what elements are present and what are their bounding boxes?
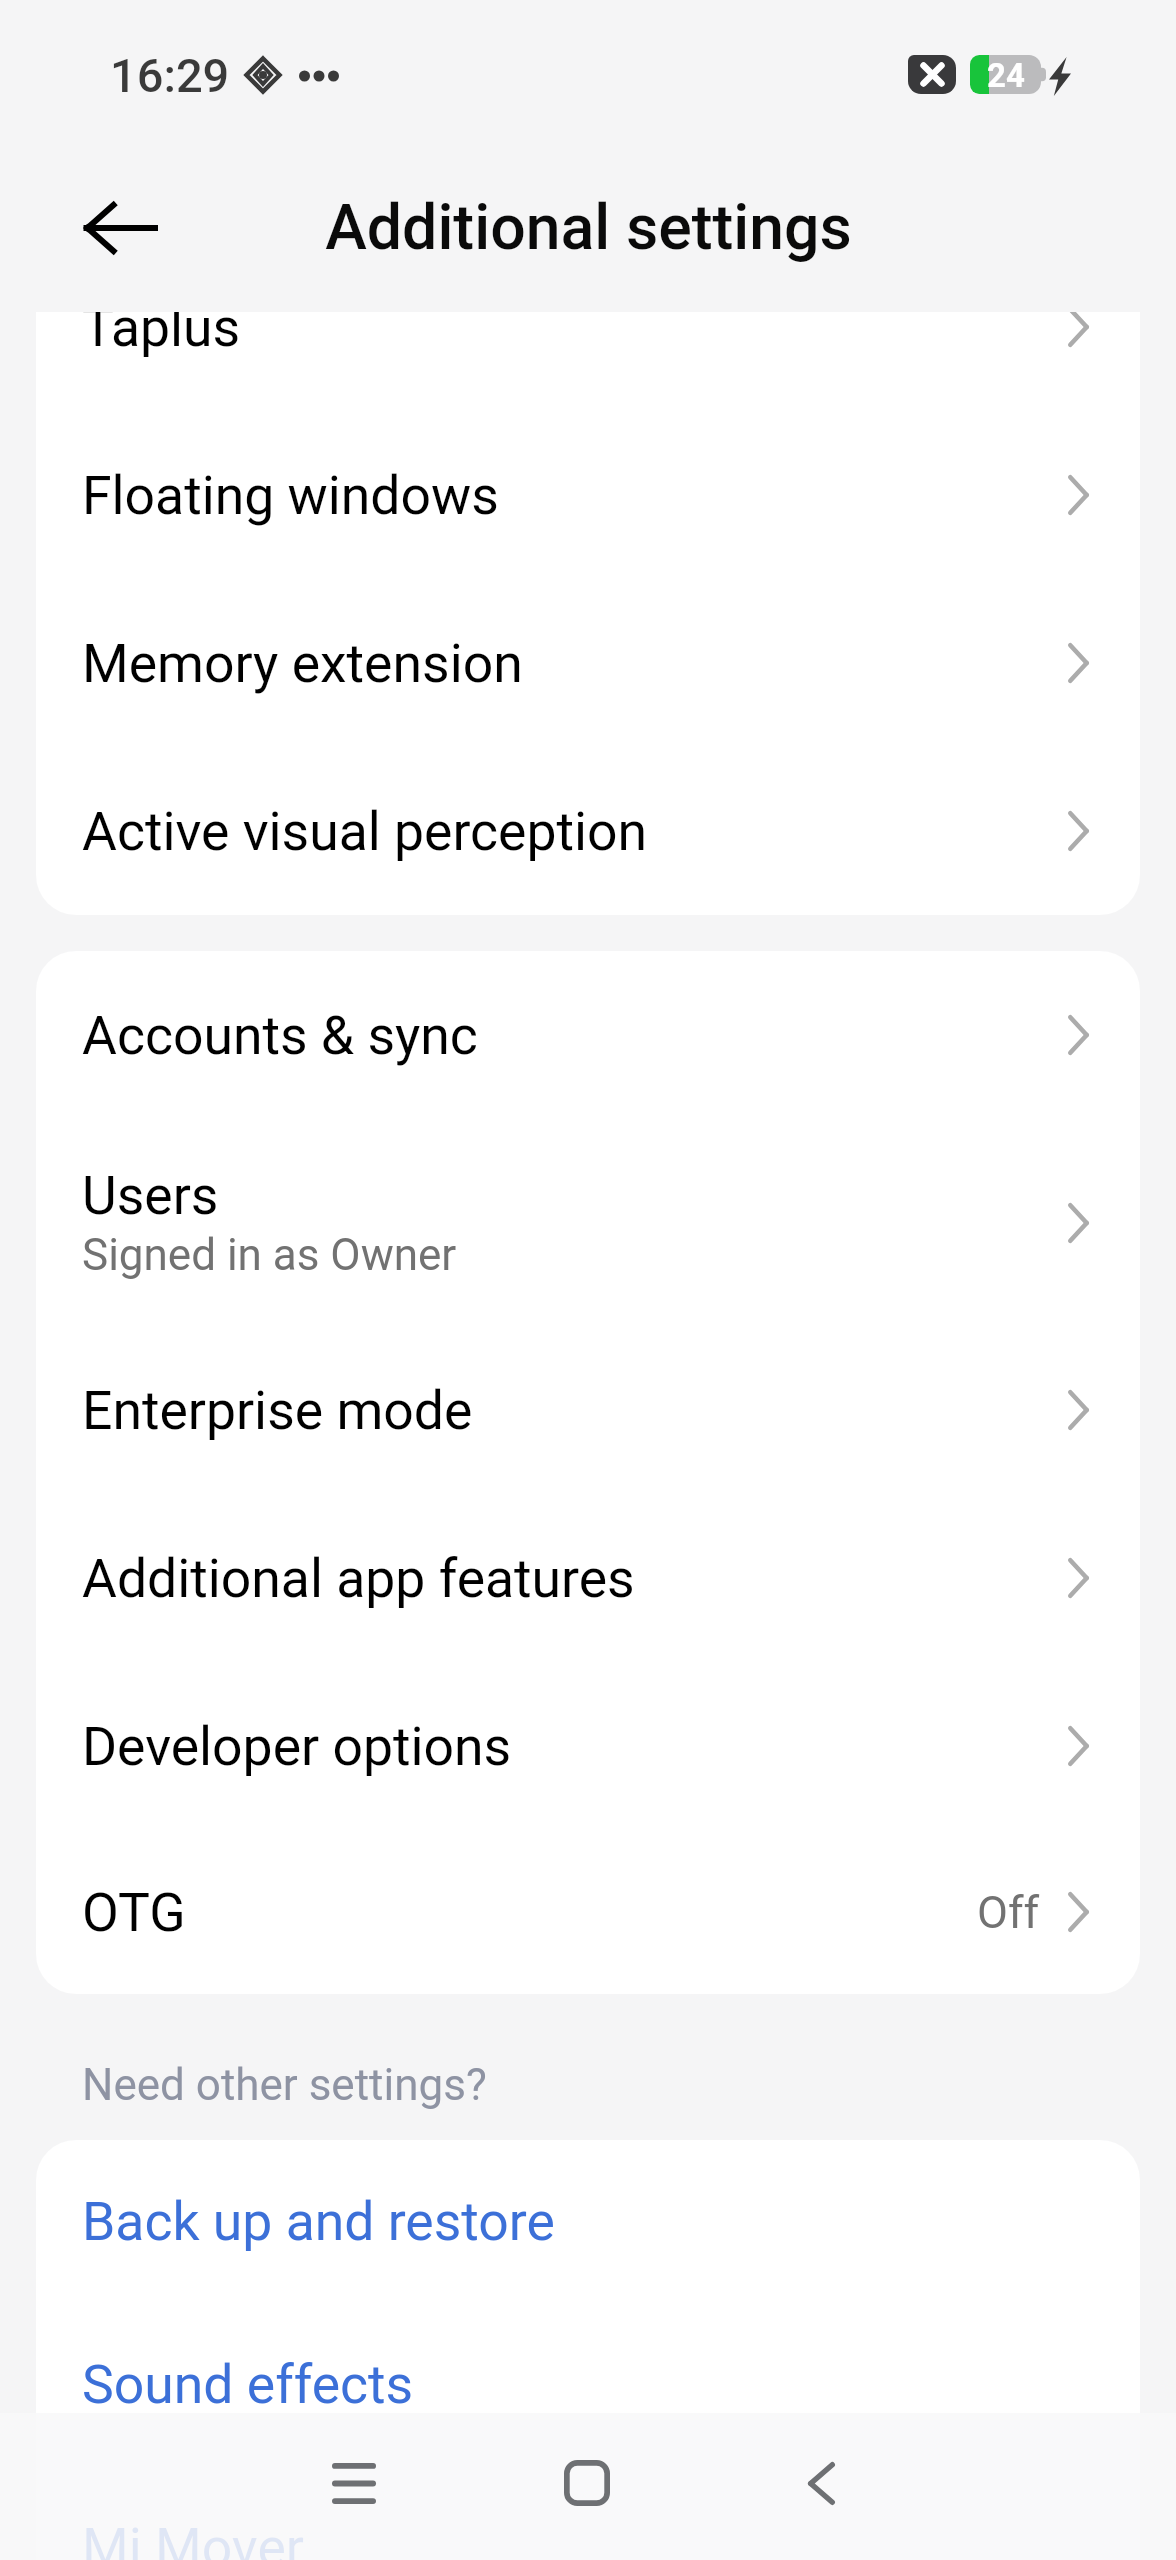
staticText: 16:29 — [110, 48, 230, 103]
button[interactable]: Floating windows — [36, 411, 1140, 579]
staticText: Developer options — [82, 1715, 512, 1778]
button[interactable]: Taplus — [36, 312, 1140, 411]
button[interactable]: OTG — [36, 1830, 1140, 1994]
staticText: Mi Mover — [82, 2516, 304, 2560]
button[interactable]: Accounts & sync — [36, 951, 1140, 1119]
button[interactable]: Users — [36, 1119, 1140, 1326]
staticText: Users — [82, 1164, 219, 1227]
button[interactable]: Back — [756, 2418, 886, 2548]
staticText: Back up and restore — [82, 2190, 555, 2253]
button[interactable]: Home — [522, 2418, 652, 2548]
staticText: Accounts & sync — [82, 1004, 478, 1067]
staticText: Enterprise mode — [82, 1379, 473, 1442]
staticText: Memory extension — [82, 632, 523, 695]
button[interactable]: Active visual perception — [36, 747, 1140, 915]
button[interactable]: Developer options — [36, 1662, 1140, 1830]
staticText: Additional settings — [325, 191, 852, 264]
button[interactable]: Sound effects — [36, 2303, 1140, 2466]
button[interactable]: Enterprise mode — [36, 1326, 1140, 1494]
staticText: Sound effects — [82, 2353, 414, 2416]
staticText: Off — [977, 1886, 1040, 1939]
button[interactable]: Back — [66, 188, 176, 268]
staticText: Additional app features — [82, 1547, 635, 1610]
staticText: 24 — [987, 56, 1025, 95]
button[interactable]: Mi Mover — [36, 2466, 1140, 2560]
staticText: Signed in as Owner — [82, 1229, 457, 1281]
button[interactable]: Recent apps — [289, 2418, 419, 2548]
button[interactable]: Additional app features — [36, 1494, 1140, 1662]
staticText: Floating windows — [82, 464, 499, 527]
button[interactable]: Memory extension — [36, 579, 1140, 747]
button[interactable]: Back up and restore — [36, 2140, 1140, 2303]
staticText: Taplus — [82, 312, 241, 359]
staticText: Active visual perception — [82, 800, 648, 863]
staticText: Need other settings? — [82, 2059, 487, 2111]
staticText: OTG — [82, 1881, 186, 1944]
